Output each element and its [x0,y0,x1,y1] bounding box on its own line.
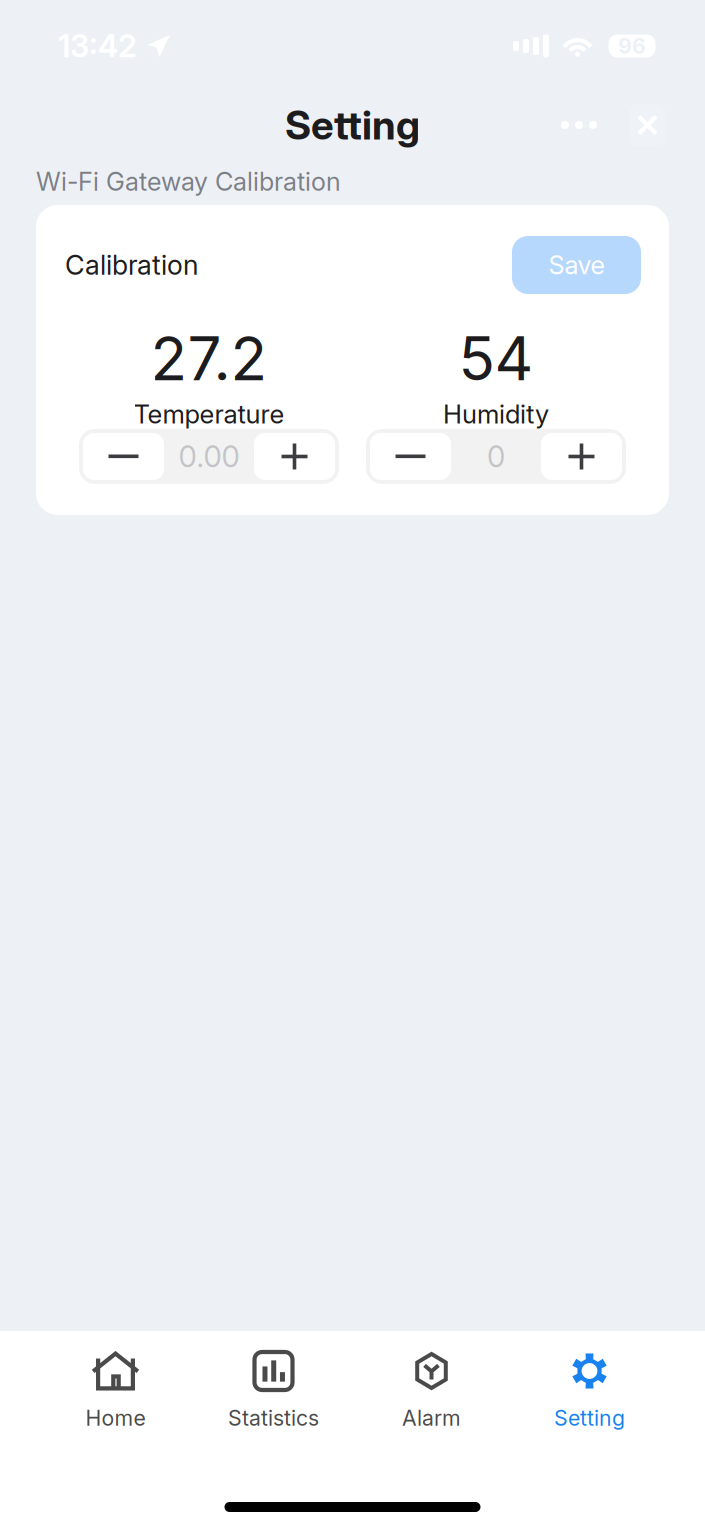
staticText: 27.2 [150,322,267,395]
button[interactable]: Statistics [194,1342,352,1438]
button[interactable]: Home [36,1342,194,1438]
button[interactable]: Increase [254,433,335,480]
staticText: 13:42 [58,27,137,64]
staticText: Wi-Fi Gateway Calibration [36,166,341,197]
staticText: Statistics [228,1405,319,1431]
staticText: 0.00 [178,439,239,474]
button[interactable]: Save [512,236,641,294]
staticText: Alarm [402,1405,461,1431]
staticText: 96 [618,33,646,59]
staticText: Humidity [443,398,549,430]
staticText: Temperature [133,398,284,430]
button[interactable]: Alarm [352,1342,510,1438]
staticText: Setting [554,1405,625,1431]
staticText: Save [548,250,604,280]
staticText: 0 [487,439,505,474]
button[interactable]: Increase [541,433,622,480]
button[interactable]: More [554,101,604,149]
staticText: Setting [285,101,420,149]
button[interactable]: Close [629,104,666,146]
staticText: Home [85,1405,145,1431]
button[interactable]: Setting [510,1342,668,1438]
button[interactable]: Decrease [83,433,164,480]
button[interactable]: Decrease [370,433,451,480]
staticText: 54 [458,322,533,395]
staticText: Calibration [65,249,199,281]
